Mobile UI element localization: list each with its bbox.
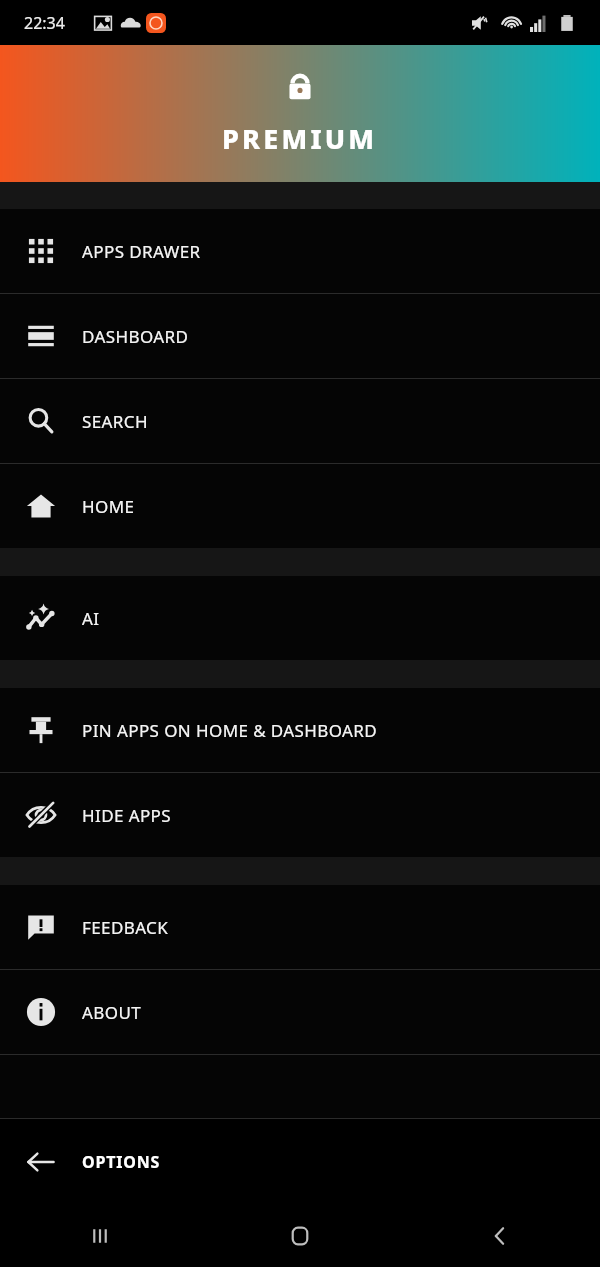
staticText: HIDE APPS: [82, 804, 172, 827]
button[interactable]: FEEDBACK: [0, 885, 600, 969]
button[interactable]: PIN APPS ON HOME & DASHBOARD: [0, 688, 600, 772]
button[interactable]: DASHBOARD: [0, 294, 600, 378]
button[interactable]: Back: [0, 1119, 600, 1204]
staticText: FEEDBACK: [82, 916, 169, 939]
button[interactable]: SEARCH: [0, 379, 600, 463]
staticText: AI: [82, 607, 100, 630]
staticText: APPS DRAWER: [82, 240, 201, 263]
staticText: HOME: [82, 495, 135, 518]
button[interactable]: Back: [400, 1204, 600, 1267]
button[interactable]: AI: [0, 576, 600, 660]
button[interactable]: PREMIUM: [0, 45, 600, 182]
staticText: PIN APPS ON HOME & DASHBOARD: [82, 719, 378, 742]
staticText: SEARCH: [82, 410, 148, 433]
button[interactable]: APPS DRAWER: [0, 209, 600, 293]
staticText: 22:34: [24, 12, 65, 34]
button[interactable]: HIDE APPS: [0, 773, 600, 857]
button[interactable]: Home: [200, 1204, 400, 1267]
staticText: PREMIUM: [222, 120, 378, 157]
staticText: OPTIONS: [82, 1151, 161, 1173]
other: Back: [26, 1147, 56, 1177]
button[interactable]: HOME: [0, 464, 600, 548]
staticText: ABOUT: [82, 1001, 142, 1024]
button[interactable]: Recent apps: [0, 1204, 200, 1267]
button[interactable]: ABOUT: [0, 970, 600, 1054]
staticText: DASHBOARD: [82, 325, 189, 348]
